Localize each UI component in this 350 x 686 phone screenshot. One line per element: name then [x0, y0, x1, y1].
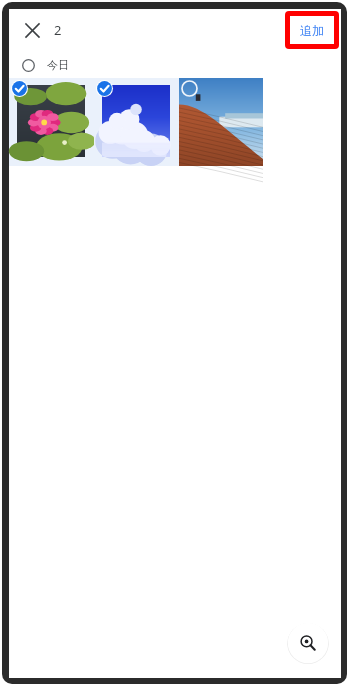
button[interactable]: すべて選択	[9, 51, 341, 78]
button[interactable]	[9, 78, 94, 166]
staticText: 今日	[47, 58, 69, 72]
button[interactable]	[179, 78, 264, 166]
staticText: 追加	[300, 23, 324, 38]
button[interactable]	[94, 78, 179, 166]
other: すべて選択	[17, 54, 39, 76]
button[interactable]: 追加	[290, 16, 334, 44]
button[interactable]: 閉じる	[19, 17, 45, 43]
button[interactable]: ズーム	[287, 622, 329, 664]
staticText: 2	[54, 21, 62, 39]
